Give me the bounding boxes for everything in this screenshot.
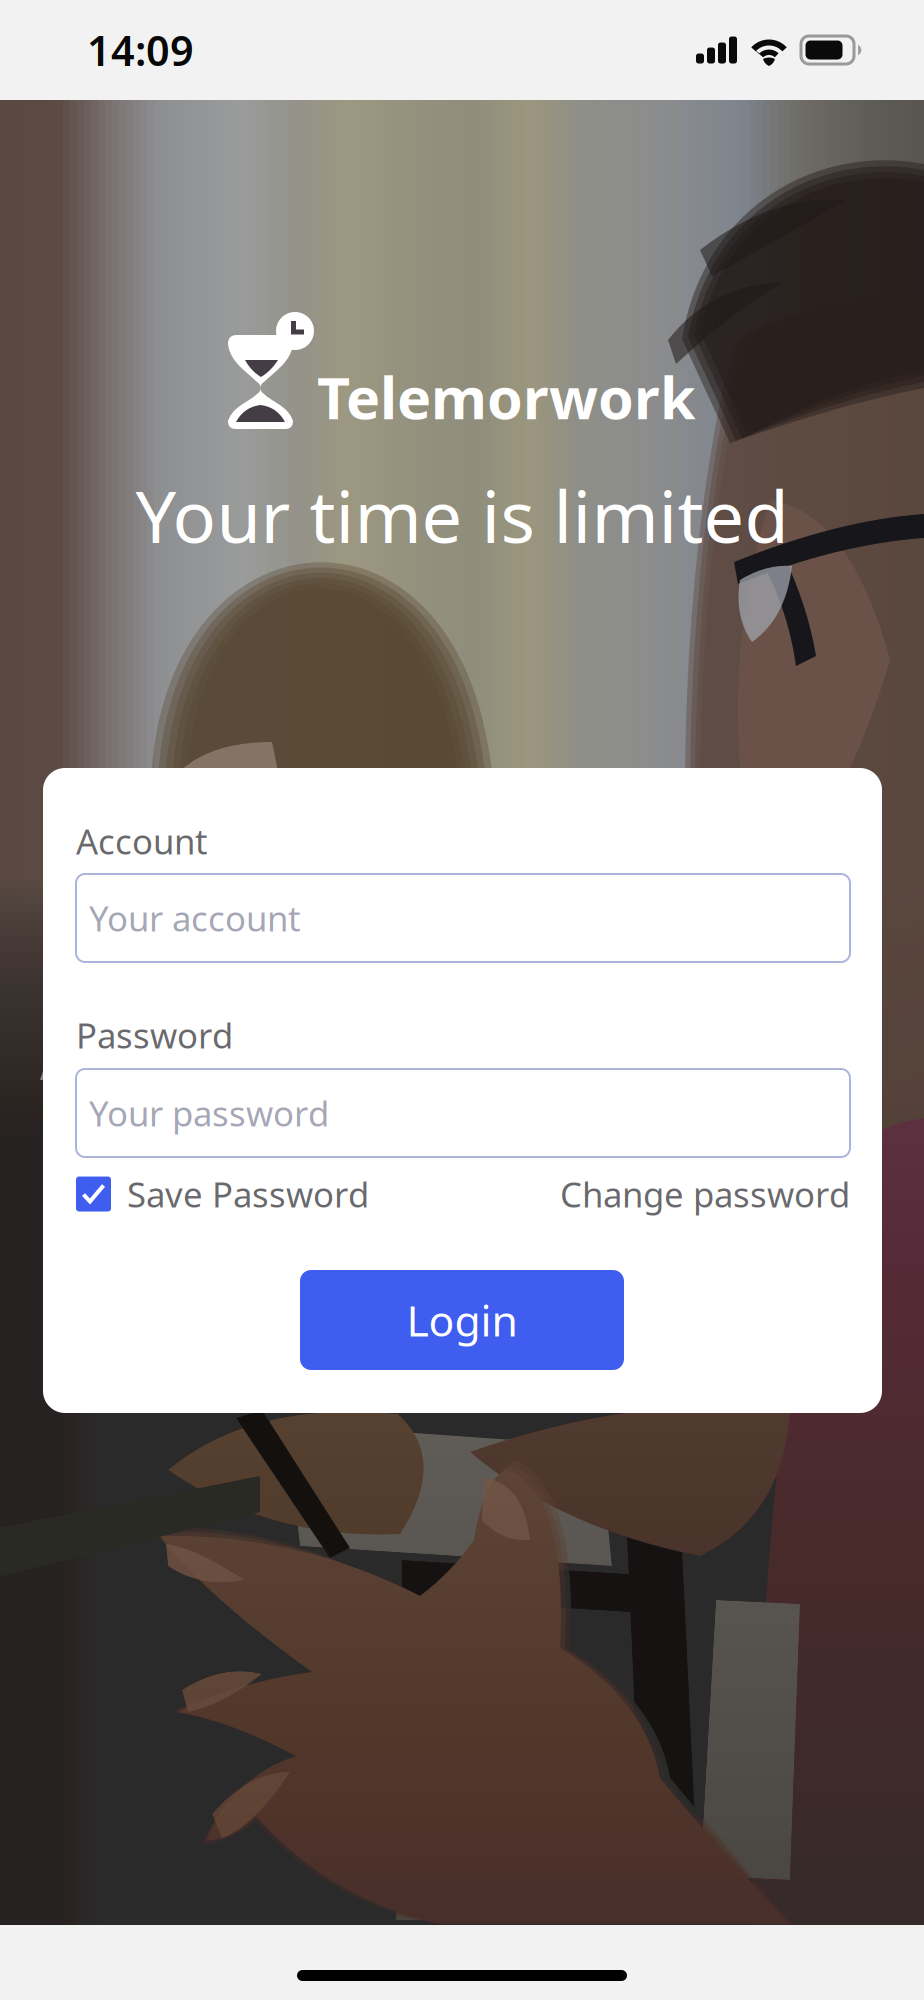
button[interactable]: Your password <box>76 1069 850 1157</box>
staticText: Your password <box>89 1090 329 1136</box>
staticText: Telemorwork <box>317 359 696 435</box>
staticText: 14:09 <box>87 23 194 77</box>
button[interactable]: Change password <box>76 1172 850 1216</box>
staticText: Save Password <box>127 1171 369 1217</box>
staticText: Password <box>76 1012 233 1058</box>
button[interactable]: Login <box>300 1270 624 1370</box>
staticText: Account <box>76 818 208 864</box>
staticText: Login <box>406 1292 517 1348</box>
staticText: Change password <box>560 1171 850 1217</box>
button[interactable]: Save Password <box>76 1172 369 1216</box>
button[interactable]: Your account <box>76 874 850 962</box>
staticText: Your account <box>89 895 301 941</box>
staticText: Your time is limited <box>135 467 788 563</box>
